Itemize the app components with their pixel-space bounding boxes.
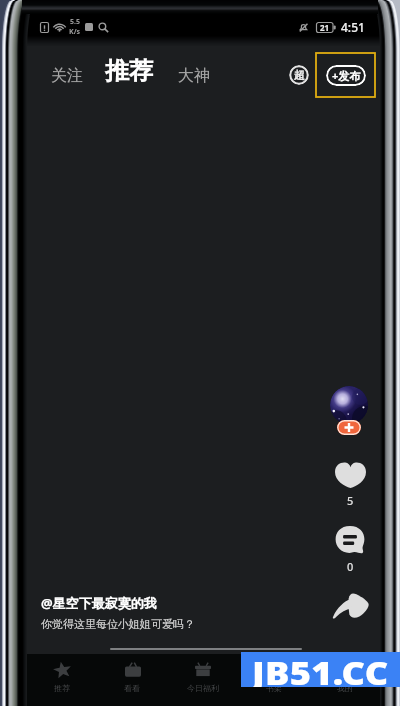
staticText: 4:51 xyxy=(341,19,365,35)
staticText: JB51.CC xyxy=(252,652,389,687)
staticText: 5 xyxy=(347,493,354,508)
button[interactable]: +发布 xyxy=(326,65,366,86)
button[interactable]: 用户头像 xyxy=(330,386,368,424)
button[interactable]: 关注 xyxy=(45,61,89,91)
staticText: @星空下最寂寞的我 xyxy=(41,594,157,612)
button[interactable]: 分享 xyxy=(330,586,370,624)
button[interactable]: 关注 xyxy=(337,420,361,435)
button[interactable]: 点赞 xyxy=(333,462,367,508)
staticText: 0 xyxy=(347,559,354,574)
staticText: 大神 xyxy=(178,66,210,86)
staticText: 21 xyxy=(320,22,330,33)
staticText: +发布 xyxy=(332,68,361,83)
staticText: 5.5 xyxy=(70,17,80,27)
staticText: 书架 xyxy=(266,683,282,693)
staticText: 你觉得这里每位小姐姐可爱吗？ xyxy=(41,617,195,631)
button[interactable]: 今日福利 xyxy=(167,659,238,706)
staticText: 关注 xyxy=(51,66,83,86)
staticText: 我的 xyxy=(337,683,353,693)
staticText: 看看 xyxy=(124,683,140,693)
staticText: 今日福利 xyxy=(187,683,219,693)
staticText: 推荐 xyxy=(105,56,153,86)
button[interactable]: 超级会员 xyxy=(289,65,309,85)
button[interactable]: 书架 xyxy=(238,659,309,706)
button[interactable]: 看看 xyxy=(97,659,167,706)
button[interactable]: 大神 xyxy=(172,61,216,91)
staticText: 超 xyxy=(294,68,305,82)
button[interactable]: 推荐 xyxy=(27,659,97,706)
button[interactable]: 评论 xyxy=(333,525,367,574)
staticText: K/s xyxy=(69,27,81,37)
button[interactable]: 推荐 xyxy=(99,51,159,91)
button[interactable]: 我的 xyxy=(309,659,380,706)
staticText: 推荐 xyxy=(54,683,70,693)
